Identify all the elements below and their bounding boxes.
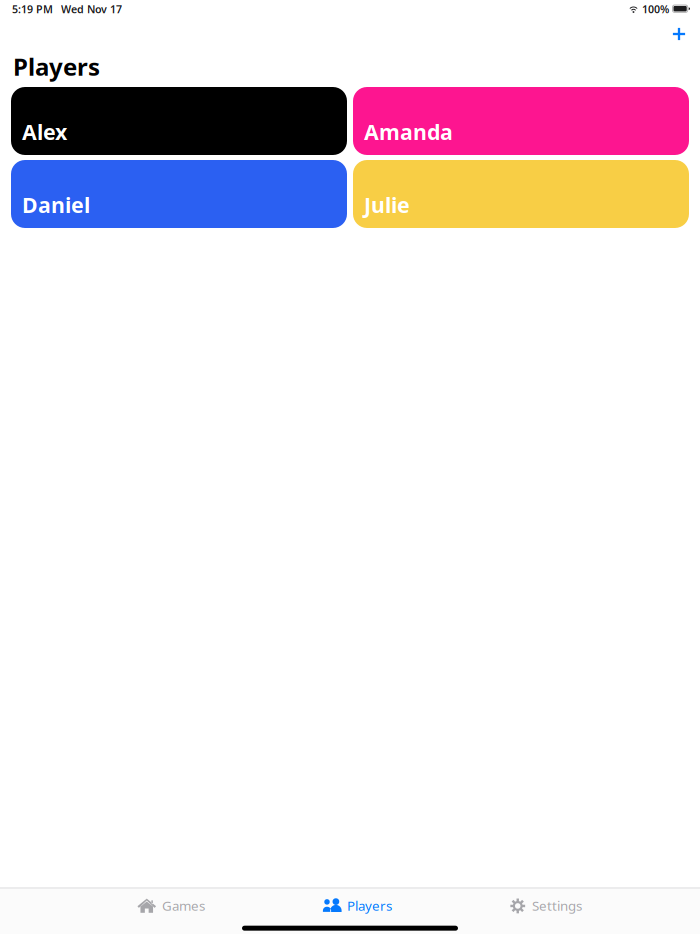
staticText: 5:19 PM <box>12 2 53 16</box>
button[interactable]: Julie <box>353 160 689 228</box>
staticText: Amanda <box>364 118 453 146</box>
button[interactable]: Alex <box>11 87 347 155</box>
staticText: Alex <box>22 118 67 146</box>
staticText: Daniel <box>22 191 90 219</box>
staticText: Players <box>347 897 392 914</box>
staticText: Games <box>162 897 205 914</box>
staticText: Settings <box>532 897 582 914</box>
button[interactable]: Daniel <box>11 160 347 228</box>
button[interactable]: Amanda <box>353 87 689 155</box>
button[interactable]: Games <box>68 894 256 918</box>
button[interactable]: Settings <box>444 894 632 918</box>
staticText: Julie <box>364 191 410 219</box>
staticText: Wed Nov 17 <box>61 2 122 16</box>
button[interactable]: Players <box>256 894 444 918</box>
button[interactable]: Add Player <box>665 20 693 48</box>
staticText: 100% <box>642 2 669 16</box>
staticText: Players <box>13 51 100 82</box>
